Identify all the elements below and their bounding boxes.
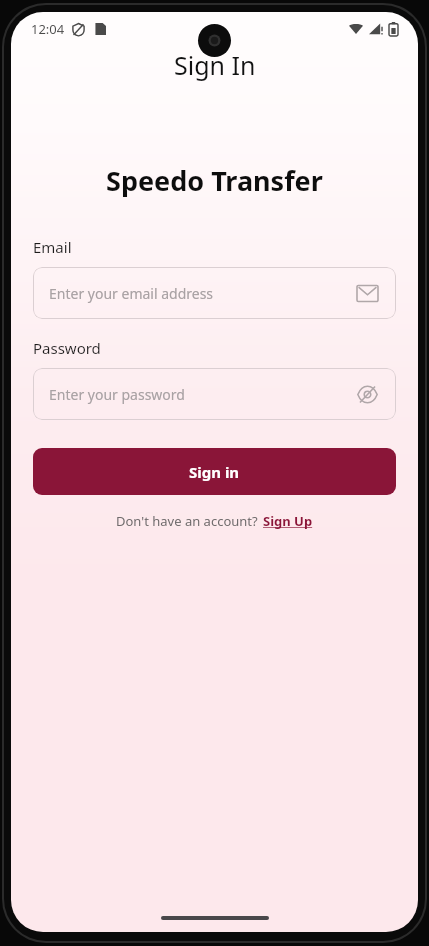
staticText: Password [33,338,101,358]
button[interactable]: Sign in [33,448,396,495]
button[interactable]: Enter your email address [33,267,396,319]
other: Email [354,280,380,306]
staticText: Email [33,237,72,257]
staticText: Speedo Transfer [106,162,323,199]
other: Show password [354,381,380,407]
staticText: Sign In [174,48,256,82]
button[interactable]: Sign Up [263,512,313,530]
staticText: 12:04 [31,20,65,38]
staticText: Enter your password [49,385,354,404]
staticText: Sign Up [263,512,313,530]
button[interactable]: Enter your password [33,368,396,420]
staticText: Enter your email address [49,284,354,303]
staticText: Don't have an account? [116,512,258,530]
staticText: Sign in [189,462,240,482]
